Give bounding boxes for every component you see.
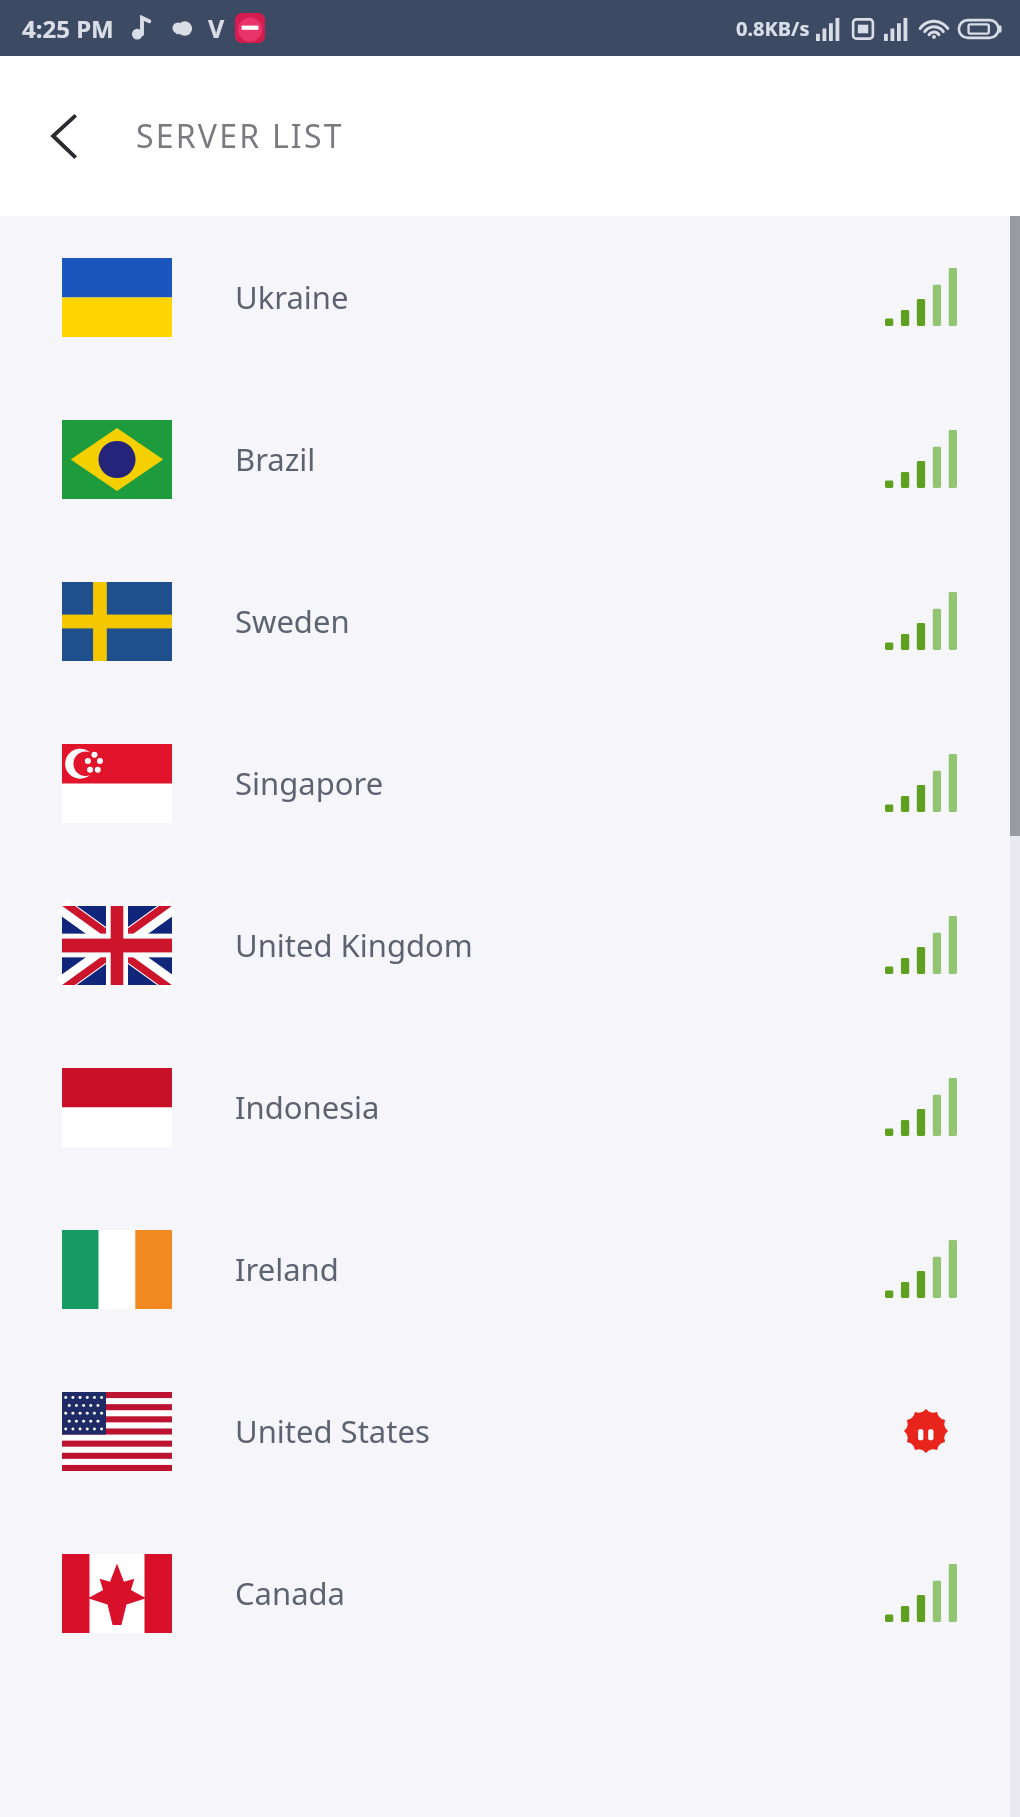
staticText: Singapore [235,762,384,804]
staticText: 4:25 PM [22,12,114,45]
staticText: Indonesia [235,1086,380,1128]
button[interactable]: Sweden [0,540,1020,702]
button[interactable]: Signal strength [878,1076,964,1138]
button[interactable]: Signal strength [878,914,964,976]
staticText: Ukraine [235,276,349,318]
staticText: Ireland [235,1248,339,1290]
button[interactable]: Brazil [0,378,1020,540]
button[interactable]: Signal strength [878,1238,964,1300]
staticText: Sweden [235,600,350,642]
staticText: 0.8KB/s [736,15,810,42]
button[interactable]: Signal strength [878,752,964,814]
button[interactable]: Canada [0,1512,1020,1674]
staticText: United States [235,1410,430,1452]
staticText: Canada [235,1572,345,1614]
button[interactable]: Premium server [888,1393,964,1469]
button[interactable]: Signal strength [878,590,964,652]
staticText: United Kingdom [235,924,473,966]
button[interactable]: United Kingdom [0,864,1020,1026]
staticText: SERVER LIST [136,114,344,158]
button[interactable]: Ukraine [0,216,1020,378]
button[interactable]: Singapore [0,702,1020,864]
button[interactable]: Back [30,100,102,172]
staticText: Brazil [235,438,316,480]
button[interactable]: Signal strength [878,1562,964,1624]
staticText: V [208,11,225,45]
button[interactable]: United States [0,1350,1020,1512]
button[interactable]: Signal strength [878,266,964,328]
button[interactable]: Ireland [0,1188,1020,1350]
button[interactable]: Indonesia [0,1026,1020,1188]
button[interactable]: Signal strength [878,428,964,490]
